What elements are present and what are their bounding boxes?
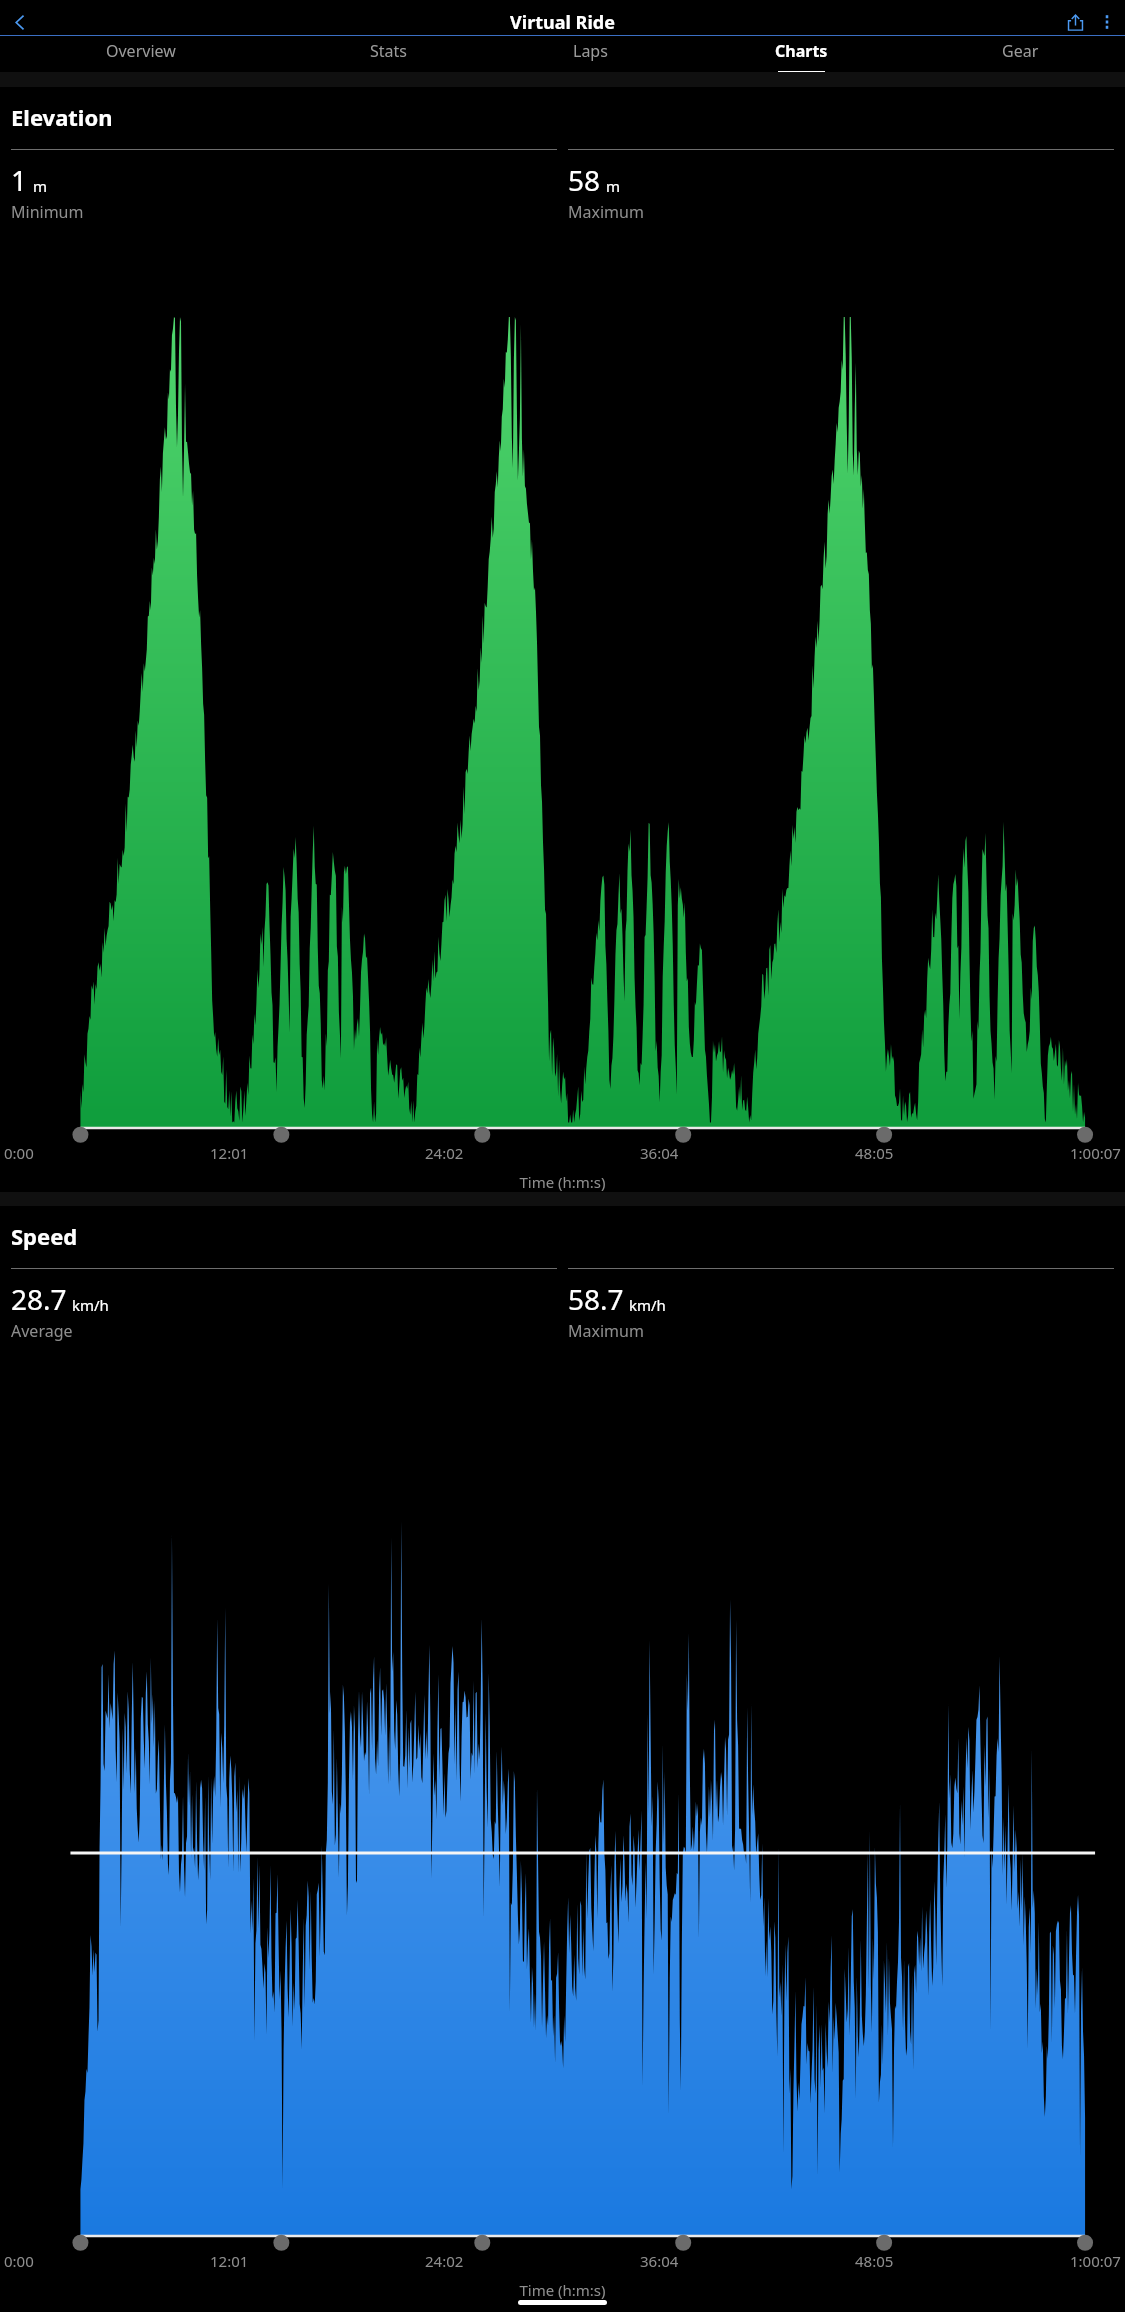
staticText: 28.7: [11, 1280, 67, 1318]
button[interactable]: Stats: [281, 36, 495, 72]
staticText: Minimum: [11, 201, 84, 223]
button[interactable]: Laps: [495, 36, 686, 72]
staticText: km/h: [72, 1295, 109, 1315]
staticText: 1:00:07: [1070, 2251, 1121, 2271]
staticText: 24:02: [425, 1143, 464, 1163]
button[interactable]: Charts: [686, 36, 916, 72]
staticText: 36:04: [640, 2251, 679, 2271]
staticText: 58.7: [568, 1280, 624, 1318]
staticText: 48:05: [855, 1143, 894, 1163]
staticText: 0:00: [4, 2251, 34, 2271]
button[interactable]: Overview: [0, 36, 281, 72]
staticText: 36:04: [640, 1143, 679, 1163]
staticText: Time (h:m:s): [0, 1172, 1125, 1192]
staticText: Gear: [1002, 40, 1039, 62]
staticText: 48:05: [855, 2251, 894, 2271]
staticText: 1:00:07: [1070, 1143, 1121, 1163]
staticText: Virtual Ride: [510, 10, 615, 35]
staticText: Maximum: [568, 201, 644, 223]
staticText: m: [606, 176, 621, 196]
staticText: 1: [11, 161, 28, 199]
staticText: Stats: [370, 40, 407, 62]
staticText: 24:02: [425, 2251, 464, 2271]
staticText: 12:01: [210, 1143, 249, 1163]
staticText: 12:01: [210, 2251, 249, 2271]
staticText: 0:00: [4, 1143, 34, 1163]
staticText: 58: [568, 161, 601, 199]
staticText: Laps: [573, 40, 608, 62]
button[interactable]: Gear: [916, 36, 1125, 72]
staticText: Maximum: [568, 1320, 644, 1342]
staticText: m: [33, 176, 48, 196]
staticText: km/h: [629, 1295, 666, 1315]
staticText: Overview: [106, 40, 176, 62]
button[interactable]: Share: [1061, 9, 1089, 35]
staticText: Time (h:m:s): [0, 2280, 1125, 2300]
staticText: Elevation: [11, 102, 113, 132]
button[interactable]: Back: [7, 9, 33, 35]
staticText: Speed: [11, 1221, 78, 1251]
staticText: Charts: [775, 40, 828, 62]
button[interactable]: More options: [1093, 9, 1121, 35]
staticText: Average: [11, 1320, 73, 1342]
